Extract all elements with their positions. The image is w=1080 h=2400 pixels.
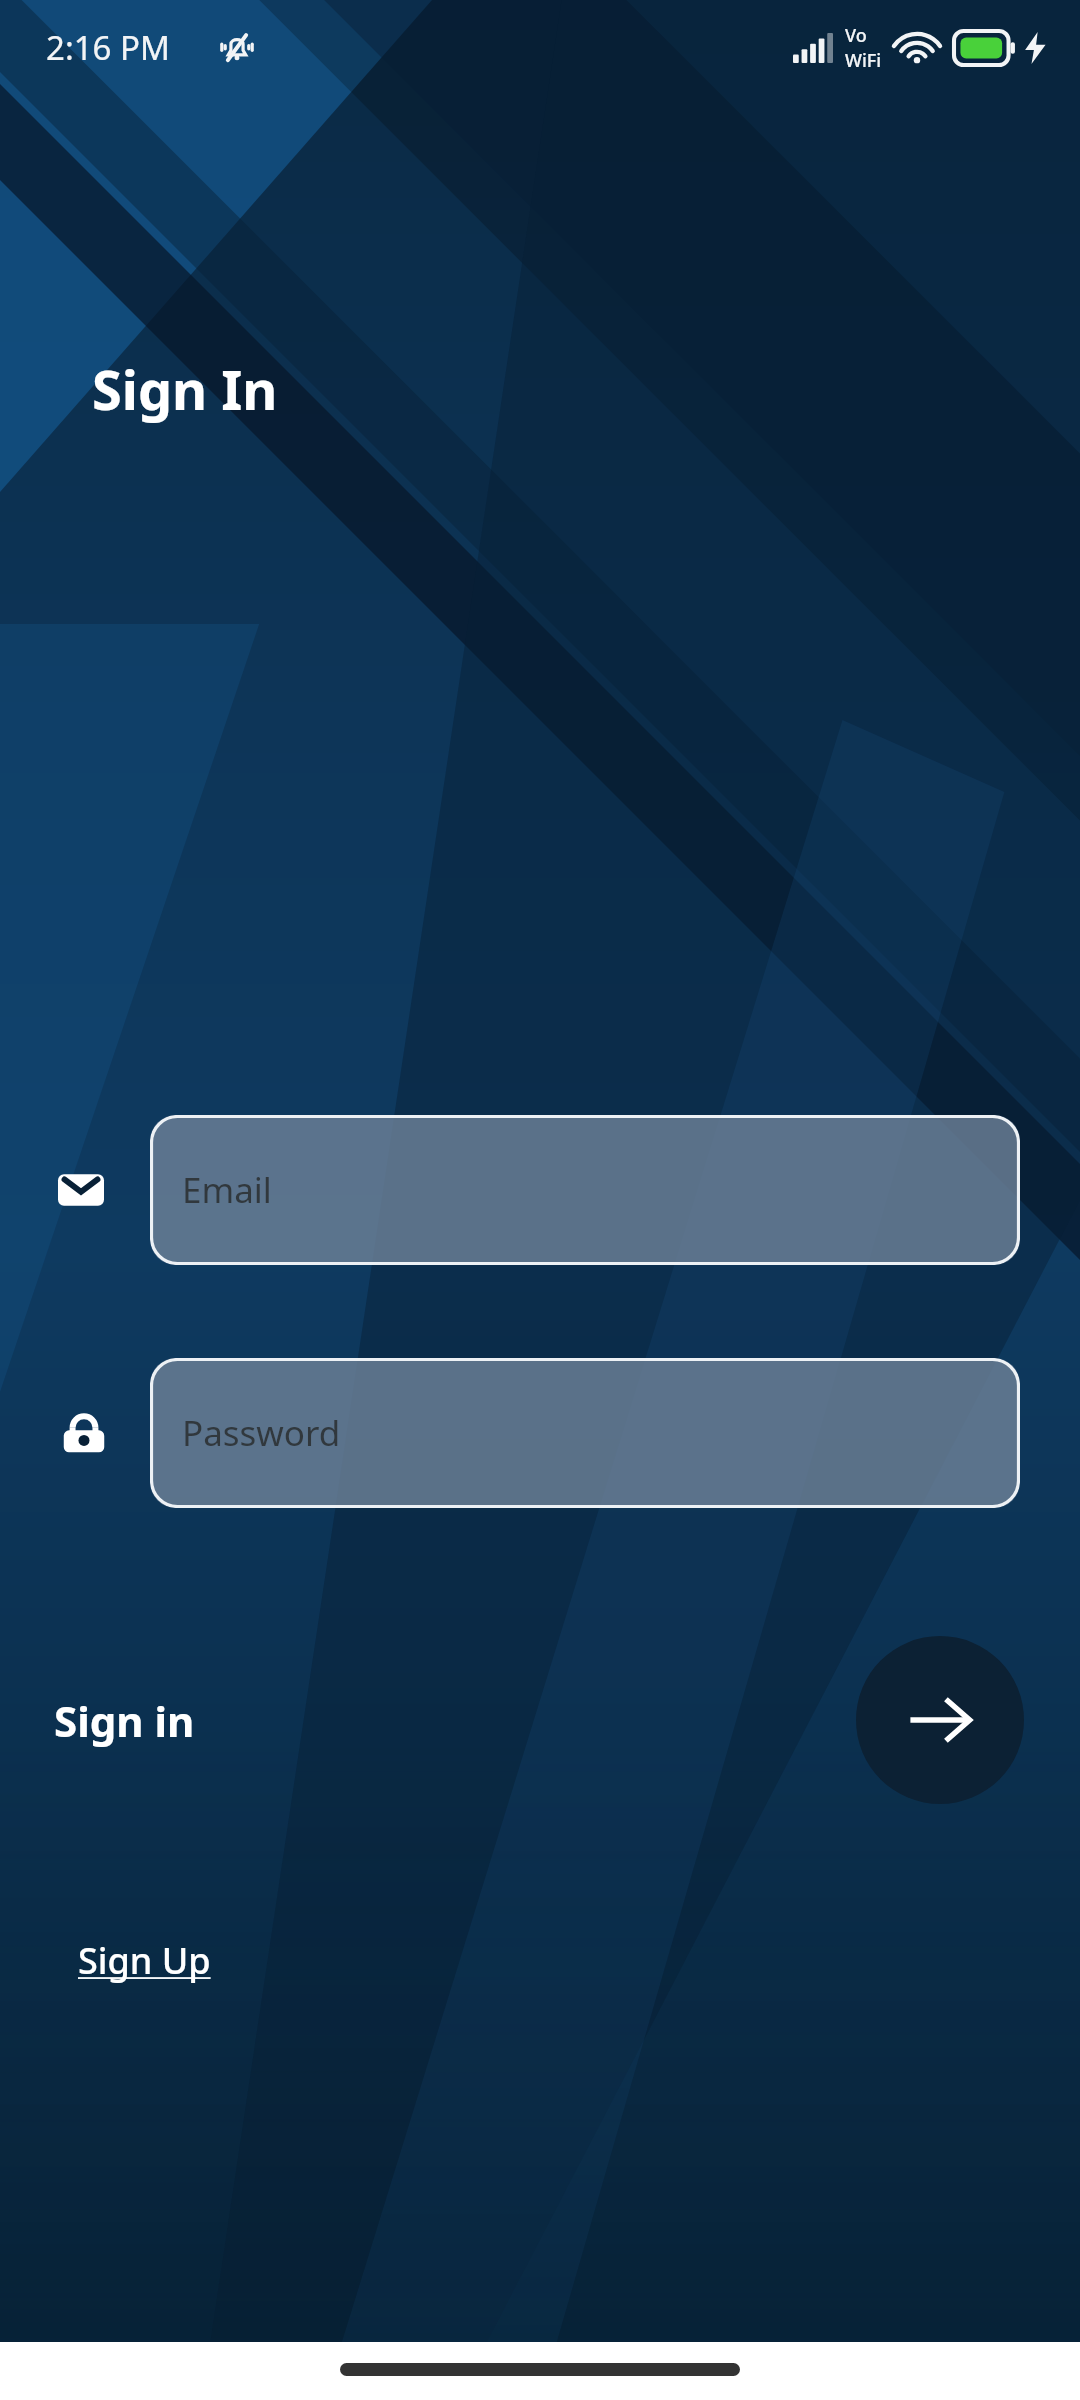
- other: Password: [62, 1411, 106, 1455]
- staticText: Password: [182, 1409, 341, 1457]
- staticText: 2:16 PM: [46, 25, 170, 70]
- button[interactable]: Email: [150, 1115, 1020, 1265]
- staticText: WiFi: [845, 48, 882, 73]
- button[interactable]: Sign Up: [76, 1930, 213, 1991]
- staticText: Sign Up: [78, 1936, 211, 1985]
- other: Email: [58, 1167, 104, 1213]
- staticText: Sign In: [92, 352, 278, 426]
- button[interactable]: Password: [150, 1358, 1020, 1508]
- button[interactable]: Submit sign in: [856, 1636, 1024, 1804]
- staticText: Vo: [845, 23, 867, 48]
- staticText: Email: [182, 1166, 272, 1214]
- button[interactable]: Sign in: [54, 1692, 195, 1749]
